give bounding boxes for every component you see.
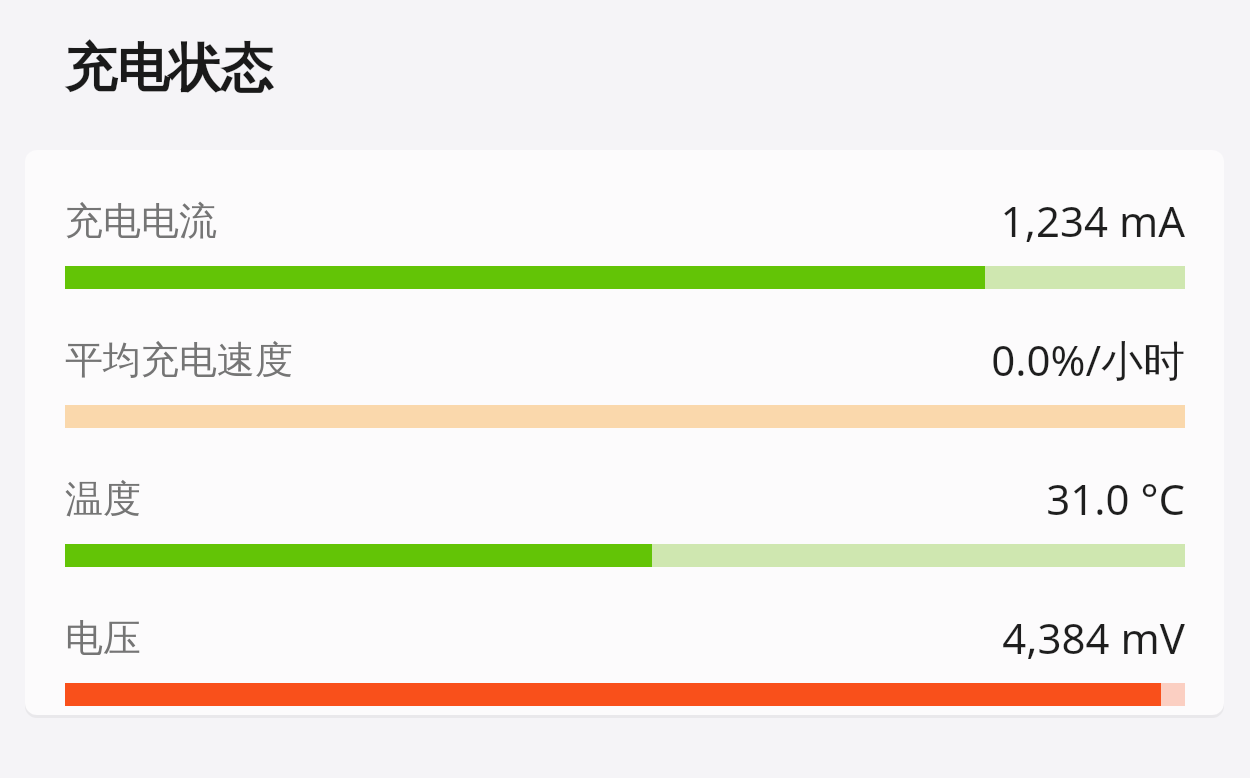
button[interactable]: 平均充电速度 [65,331,1185,428]
staticText: 电压 [65,614,141,662]
staticText: 温度 [65,475,141,523]
staticText: 充电状态 [65,36,273,102]
staticText: 充电电流 [65,197,217,245]
button[interactable]: 电压 [65,609,1185,706]
staticText: 平均充电速度 [65,336,293,384]
staticText: 31.0 °C [1046,470,1185,527]
staticText: 0.0%/小时 [991,331,1185,388]
staticText: 4,384 mV [1002,609,1185,666]
button[interactable]: 温度 [65,470,1185,567]
button[interactable]: 充电电流 [25,150,1224,715]
button[interactable]: 充电电流 [65,192,1185,289]
staticText: 1,234 mA [1000,192,1185,249]
